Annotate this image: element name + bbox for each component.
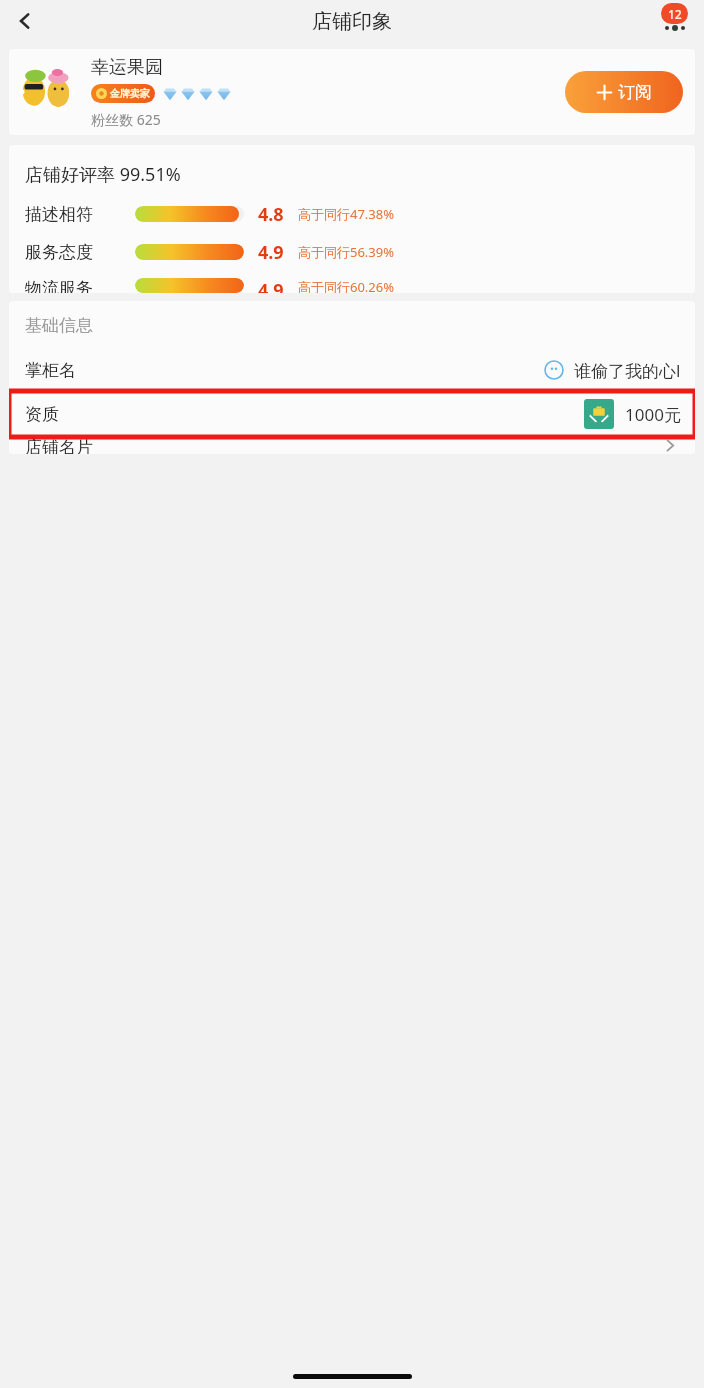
- button[interactable]: Back: [9, 5, 41, 37]
- staticText: 店铺印象: [312, 9, 392, 34]
- button[interactable]: 掌柜名: [9, 349, 695, 391]
- staticText: 幸运果园: [91, 56, 163, 79]
- staticText: 高于同行56.39%: [298, 243, 395, 261]
- staticText: 高于同行47.38%: [298, 205, 395, 223]
- staticText: 描述相符: [25, 204, 125, 225]
- button[interactable]: 店铺名片: [9, 437, 695, 454]
- button[interactable]: 幸运果园: [9, 49, 695, 135]
- staticText: 12: [668, 6, 682, 22]
- staticText: 店铺名片: [25, 437, 93, 454]
- staticText: 金牌卖家: [110, 87, 150, 100]
- staticText: 4.9: [258, 278, 292, 293]
- staticText: 1000元: [625, 403, 681, 426]
- staticText: 谁偷了我的心l: [574, 359, 681, 382]
- staticText: 服务态度: [25, 242, 125, 263]
- staticText: 4.8: [258, 202, 292, 226]
- staticText: 高于同行60.26%: [298, 278, 395, 293]
- staticText: 4.9: [258, 240, 292, 264]
- staticText: 基础信息: [25, 315, 93, 336]
- button[interactable]: More options, 12 notifications: [652, 0, 696, 41]
- button[interactable]: 资质: [9, 391, 695, 437]
- staticText: 订阅: [618, 82, 652, 103]
- staticText: 掌柜名: [25, 360, 76, 381]
- staticText: 资质: [25, 404, 59, 425]
- staticText: 粉丝数 625: [91, 110, 161, 129]
- staticText: 店铺好评率 99.51%: [25, 162, 181, 187]
- button[interactable]: 订阅: [565, 71, 683, 113]
- staticText: 物流服务: [25, 278, 125, 293]
